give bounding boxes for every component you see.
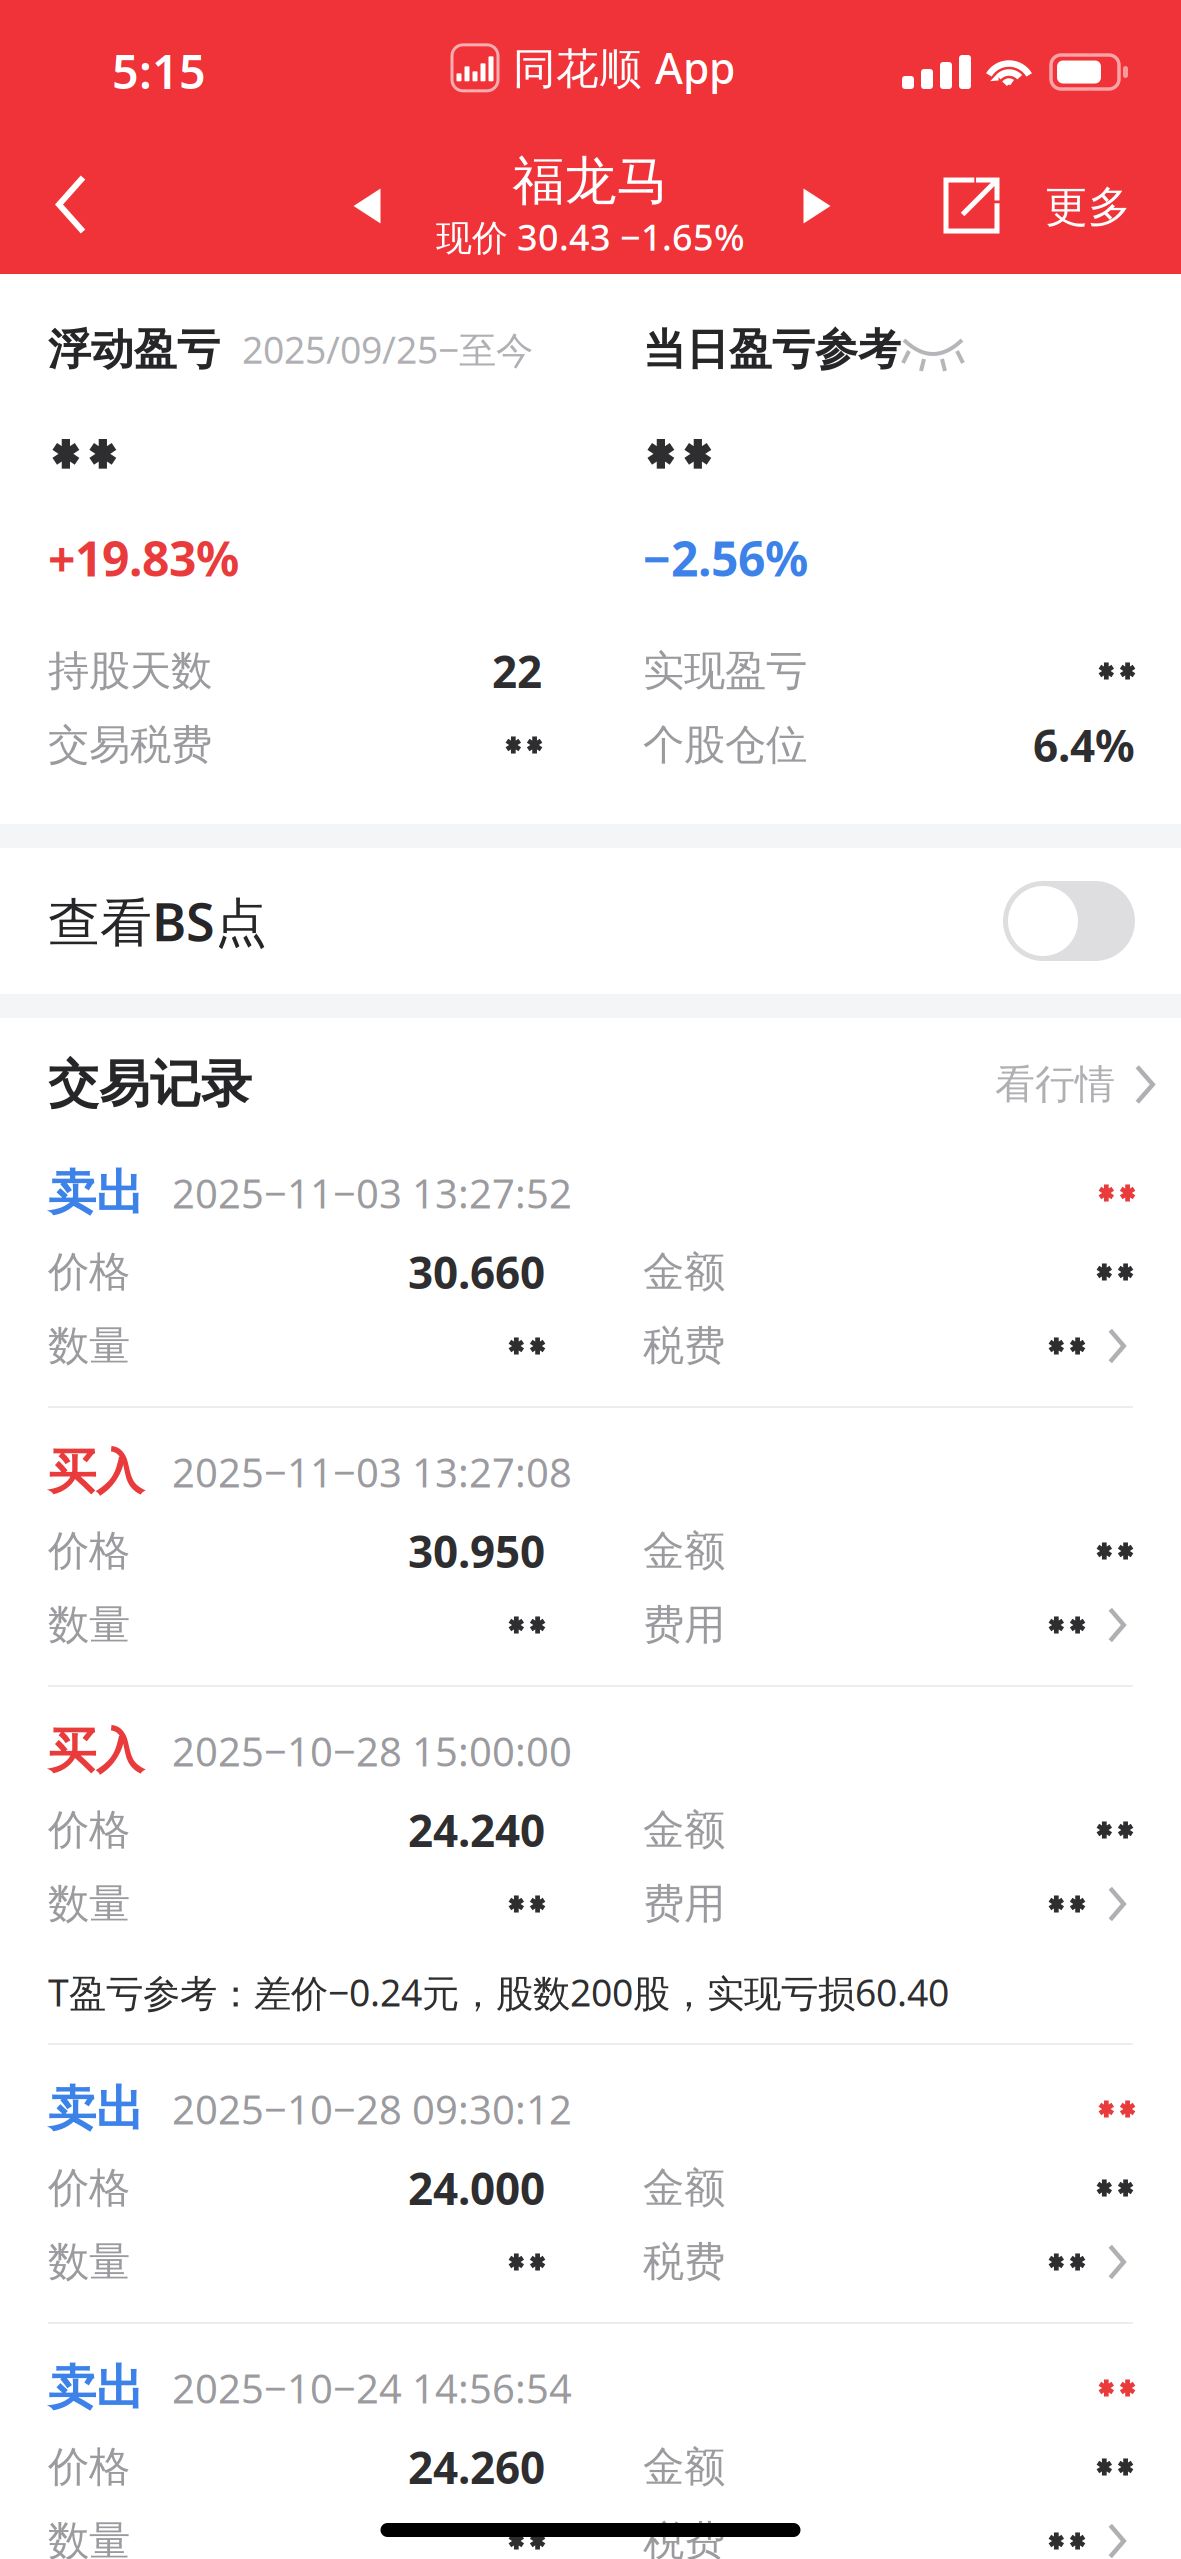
staticText: 价格 [48, 1526, 130, 1576]
staticText: 5:15 [112, 40, 206, 102]
staticText: 浮动盈亏 [48, 324, 220, 376]
staticText: 看行情 [995, 1060, 1115, 1109]
staticText: 24.000 [408, 2159, 545, 2217]
button[interactable]: 买入 [0, 1709, 1181, 2067]
staticText: 交易税费 [48, 720, 212, 770]
staticText: 金额 [643, 1805, 725, 1855]
staticText: 金额 [643, 2442, 725, 2492]
staticText: 金额 [643, 1247, 725, 1297]
staticText: 实现盈亏 [643, 646, 807, 696]
staticText: 22 [492, 642, 542, 700]
button[interactable]: 分享 [914, 129, 1029, 276]
staticText: 费用 [643, 1879, 725, 1929]
button[interactable]: 卖出 [0, 2067, 1181, 2346]
staticText: 数量 [48, 1600, 130, 1650]
staticText: 买入 [48, 1442, 144, 1501]
staticText: 福龙马 [512, 149, 668, 213]
staticText: 费用 [643, 1600, 725, 1650]
staticText: 2025−11−03 13:27:52 [172, 1166, 572, 1219]
staticText: 30.660 [408, 1243, 545, 1301]
staticText: 卖出 [48, 2358, 144, 2417]
staticText: 金额 [643, 1526, 725, 1576]
staticText: 6.4% [1033, 716, 1135, 774]
staticText: 价格 [48, 1247, 130, 1297]
staticText: 30.950 [408, 1522, 545, 1580]
staticText: 税费 [643, 2516, 725, 2559]
staticText: 税费 [643, 1321, 725, 1371]
staticText: 2025−10−28 09:30:12 [172, 2082, 572, 2135]
staticText: 交易记录 [48, 1053, 252, 1116]
staticText: 2025/09/25−至今 [242, 324, 533, 374]
button[interactable]: 查看BS点 [0, 848, 1181, 994]
staticText: 税费 [643, 2237, 725, 2287]
staticText: 现价 30.43 −1.65% [436, 213, 745, 261]
button[interactable]: 返回 [0, 130, 142, 275]
button[interactable]: 买入 [0, 1430, 1181, 1709]
staticText: +19.83% [48, 526, 239, 590]
staticText: −2.56% [643, 526, 808, 590]
staticText: 卖出 [48, 2079, 144, 2138]
staticText: 24.240 [408, 1801, 545, 1859]
staticText: 数量 [48, 1879, 130, 1929]
staticText: 数量 [48, 2237, 130, 2287]
staticText: 价格 [48, 2163, 130, 2213]
staticText: 持股天数 [48, 646, 212, 696]
staticText: 价格 [48, 2442, 130, 2492]
staticText: 金额 [643, 2163, 725, 2213]
staticText: 买入 [48, 1721, 144, 1780]
staticText: 2025−10−24 14:56:54 [172, 2361, 572, 2414]
staticText: 数量 [48, 2516, 130, 2559]
staticText: 2025−10−28 15:00:00 [172, 1724, 572, 1777]
staticText: 数量 [48, 1321, 130, 1371]
staticText: 更多 [1045, 181, 1131, 233]
staticText: 24.260 [408, 2438, 545, 2496]
staticText: 卖出 [48, 1163, 144, 1222]
button[interactable]: 卖出 [0, 1151, 1181, 1430]
staticText: 查看BS点 [48, 886, 267, 956]
button[interactable]: 上一只 [307, 129, 427, 277]
staticText: 当日盈亏参考 [643, 324, 901, 376]
staticText: 同花顺 App [513, 39, 735, 96]
button[interactable]: 下一只 [757, 129, 877, 277]
staticText: T盈亏参考：差价−0.24元，股数200股，实现亏损60.40 [48, 1967, 949, 2017]
staticText: 价格 [48, 1805, 130, 1855]
button[interactable]: 卖出 [0, 2346, 1181, 2559]
staticText: 2025−11−03 13:27:08 [172, 1445, 572, 1498]
button[interactable]: 更多 [995, 128, 1181, 278]
button[interactable]: 交易记录 [0, 1018, 1181, 1151]
staticText: 个股仓位 [643, 720, 807, 770]
